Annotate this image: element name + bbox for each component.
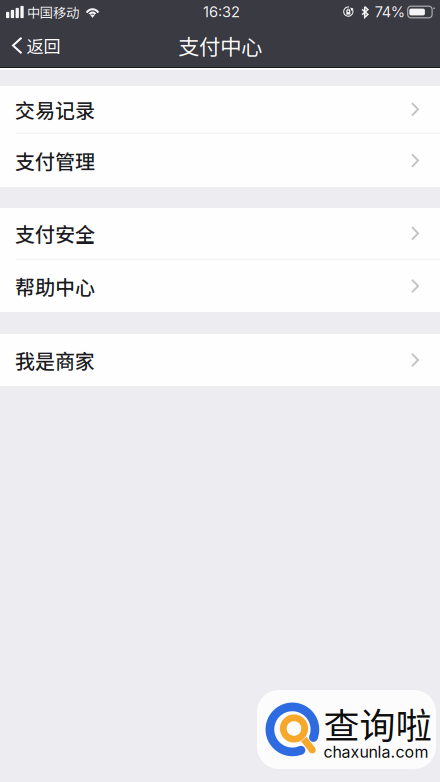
staticText: 74% [375,3,405,21]
staticText: 支付中心 [178,30,262,61]
button[interactable]: 返回 [0,24,70,67]
staticText: 支付管理 [15,146,95,175]
staticText: 交易记录 [15,95,95,124]
staticText: 查询啦 [323,697,431,749]
staticText: 返回 [26,33,60,58]
button[interactable]: 我是商家 [0,334,440,386]
staticText: 中国移动 [27,2,79,22]
staticText: 我是商家 [15,345,95,374]
staticText: 帮助中心 [15,271,95,300]
button[interactable]: 支付安全 [0,208,440,260]
button[interactable]: 交易记录 [0,86,440,134]
button[interactable]: 帮助中心 [0,260,440,312]
staticText: 16:32 [203,3,240,21]
staticText: chaxunla.com [323,742,428,762]
staticText: 支付安全 [15,219,95,248]
button[interactable]: 支付管理 [0,134,440,187]
